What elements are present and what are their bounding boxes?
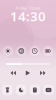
- staticText: 14:30: [10, 7, 46, 25]
- button[interactable]: Wallet: [29, 84, 41, 96]
- button[interactable]: Battery: [43, 45, 54, 56]
- button[interactable]: Next track: [38, 70, 47, 76]
- button[interactable]: Camera: [43, 84, 54, 96]
- button[interactable]: Flashlight: [2, 84, 13, 96]
- button[interactable]: World Clock: [29, 45, 40, 56]
- button[interactable]: Weather: [2, 45, 13, 56]
- button[interactable]: Activity: [16, 45, 27, 56]
- button[interactable]: Previous track: [8, 70, 17, 76]
- button[interactable]: Focus: [15, 84, 27, 96]
- staticText: Friday, 13 June: [15, 5, 40, 11]
- button[interactable]: Play: [23, 70, 32, 76]
